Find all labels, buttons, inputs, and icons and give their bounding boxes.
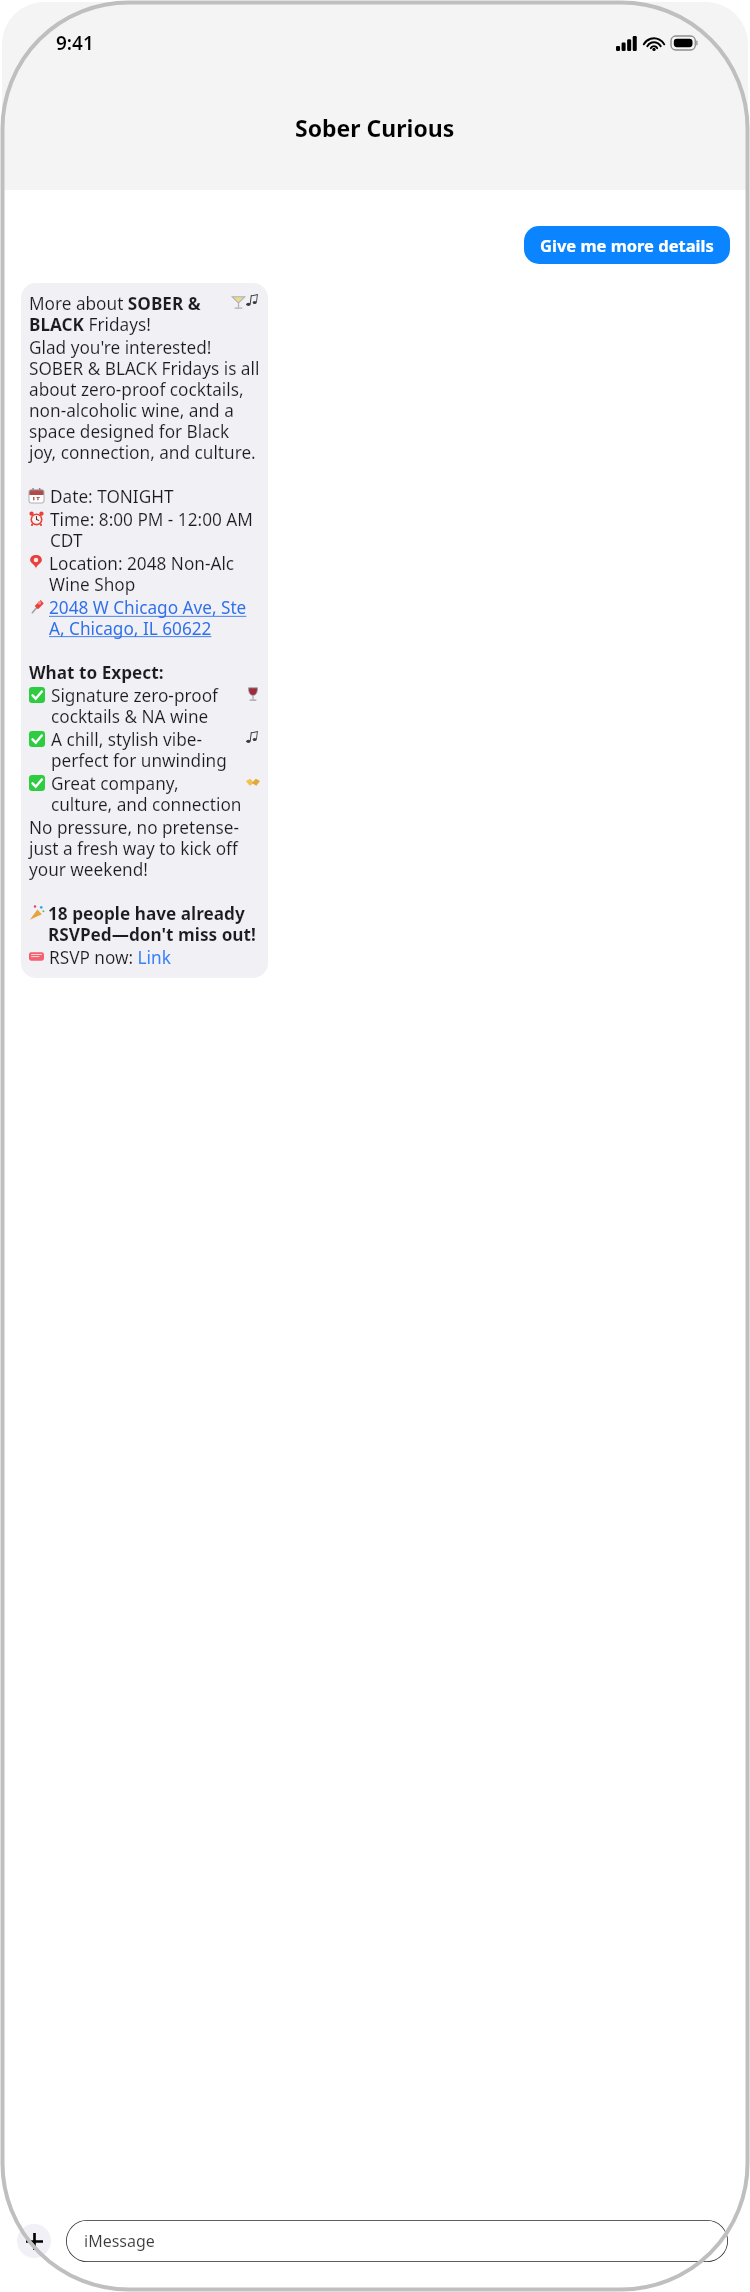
staticText: No pressure, no pretense-just a fresh wa… — [29, 816, 260, 881]
staticText: More about SOBER & BLACK Fridays! — [29, 292, 231, 336]
button[interactable]: Add attachment — [17, 2224, 51, 2258]
staticText: Date: TONIGHT — [50, 485, 174, 508]
staticText: 2048 W Chicago Ave, Ste A, Chicago, IL 6… — [49, 596, 260, 640]
staticText: What to Expect: — [29, 661, 164, 684]
staticText: Glad you're interested! SOBER & BLACK Fr… — [29, 336, 260, 464]
button[interactable]: iMessage — [66, 2220, 728, 2262]
staticText: Give me more details — [540, 234, 714, 256]
staticText: A chill, stylish vibe-perfect for unwind… — [51, 728, 242, 772]
staticText: Great company, culture, and connection — [51, 772, 242, 816]
staticText: Location: 2048 Non-Alc Wine Shop — [49, 552, 260, 596]
staticText: iMessage — [84, 2230, 155, 2252]
button[interactable]: More about SOBER & BLACK Fridays! — [21, 283, 268, 978]
staticText: Time: 8:00 PM - 12:00 AM CDT — [50, 508, 260, 552]
staticText: Signature zero-proof cocktails & NA wine — [51, 684, 242, 728]
staticText: Sober Curious — [295, 112, 455, 143]
button[interactable]: Give me more details — [524, 226, 730, 264]
staticText: 18 people have already RSVPed—don't miss… — [48, 902, 260, 946]
staticText: RSVP now: Link — [49, 946, 171, 969]
staticText: 9:41 — [56, 30, 94, 56]
